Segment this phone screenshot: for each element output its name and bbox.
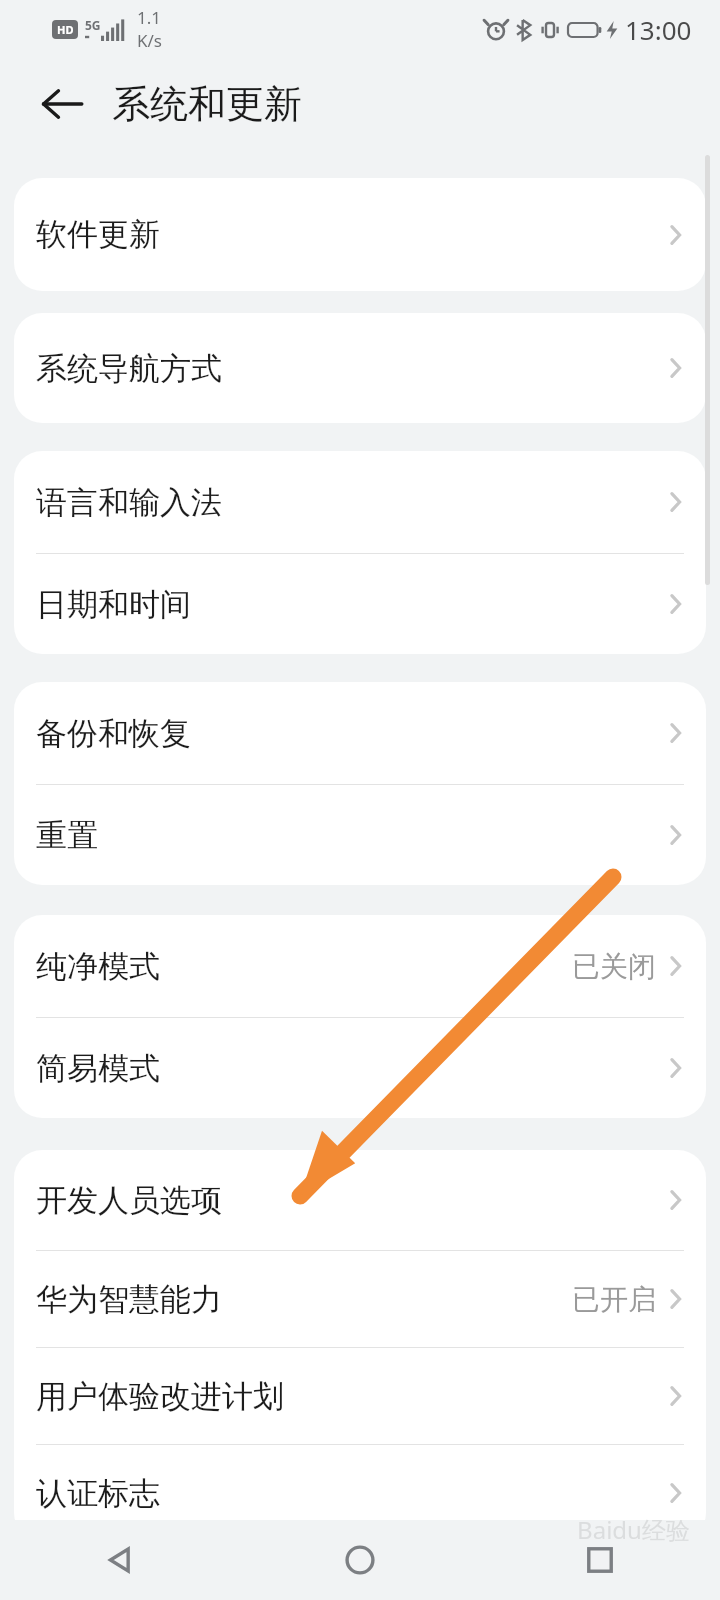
staticText: 日期和时间: [36, 585, 191, 624]
staticText: HD: [57, 22, 74, 37]
button[interactable]: 语言和输入法: [14, 451, 706, 553]
button[interactable]: 软件更新: [14, 178, 706, 291]
staticText: 用户体验改进计划: [36, 1377, 284, 1416]
button[interactable]: Back: [0, 1520, 240, 1600]
button[interactable]: Home: [240, 1520, 480, 1600]
button[interactable]: 用户体验改进计划: [14, 1348, 706, 1444]
staticText: 软件更新: [36, 215, 160, 254]
button[interactable]: 华为智慧能力: [14, 1251, 706, 1347]
staticText: 1.1: [137, 6, 162, 29]
staticText: 重置: [36, 816, 98, 855]
button[interactable]: 日期和时间: [14, 554, 706, 654]
staticText: 已开启: [572, 1282, 656, 1317]
button[interactable]: 开发人员选项: [14, 1150, 706, 1250]
staticText: 认证标志: [36, 1474, 160, 1513]
staticText: 5G: [85, 17, 101, 33]
staticText: 已关闭: [572, 949, 656, 984]
staticText: 13:00: [625, 12, 692, 47]
staticText: 备份和恢复: [36, 714, 191, 753]
staticText: 系统导航方式: [36, 349, 222, 388]
button[interactable]: 备份和恢复: [14, 682, 706, 784]
button[interactable]: 认证标志: [14, 1445, 706, 1541]
staticText: Baidu经验: [577, 1513, 690, 1546]
staticText: 纯净模式: [36, 947, 160, 986]
button[interactable]: 纯净模式: [14, 915, 706, 1017]
staticText: K/s: [137, 29, 162, 52]
button[interactable]: Recents: [480, 1520, 720, 1600]
staticText: 简易模式: [36, 1049, 160, 1088]
button[interactable]: Back: [34, 76, 90, 132]
button[interactable]: 系统导航方式: [14, 313, 706, 423]
staticText: 系统和更新: [112, 80, 302, 128]
staticText: 开发人员选项: [36, 1181, 222, 1220]
button[interactable]: 重置: [14, 785, 706, 885]
button[interactable]: 简易模式: [14, 1018, 706, 1118]
staticText: 语言和输入法: [36, 483, 222, 522]
staticText: 华为智慧能力: [36, 1280, 222, 1319]
